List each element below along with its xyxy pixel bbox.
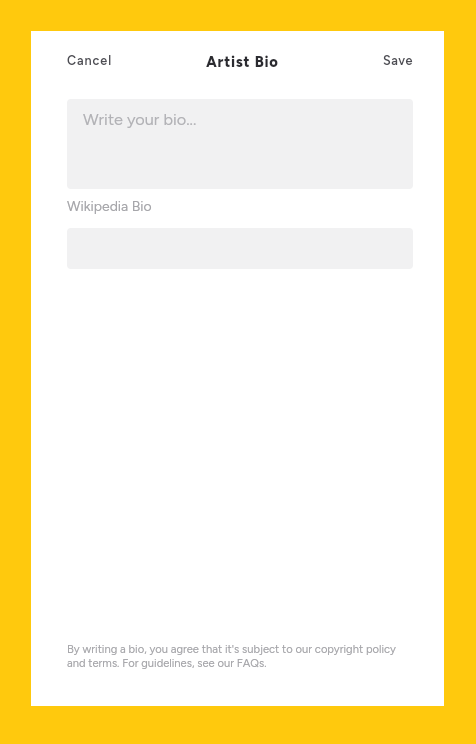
- staticText: Write your bio...: [83, 110, 197, 130]
- staticText: Cancel: [67, 53, 113, 68]
- staticText: Wikipedia Bio: [67, 198, 152, 215]
- button[interactable]: Save: [375, 45, 421, 76]
- staticText: By writing a bio, you agree that it's su…: [67, 642, 413, 670]
- button[interactable]: Cancel: [59, 45, 121, 76]
- button[interactable]: Write your bio: [67, 99, 413, 189]
- staticText: Artist Bio: [206, 53, 279, 71]
- staticText: Save: [383, 53, 413, 68]
